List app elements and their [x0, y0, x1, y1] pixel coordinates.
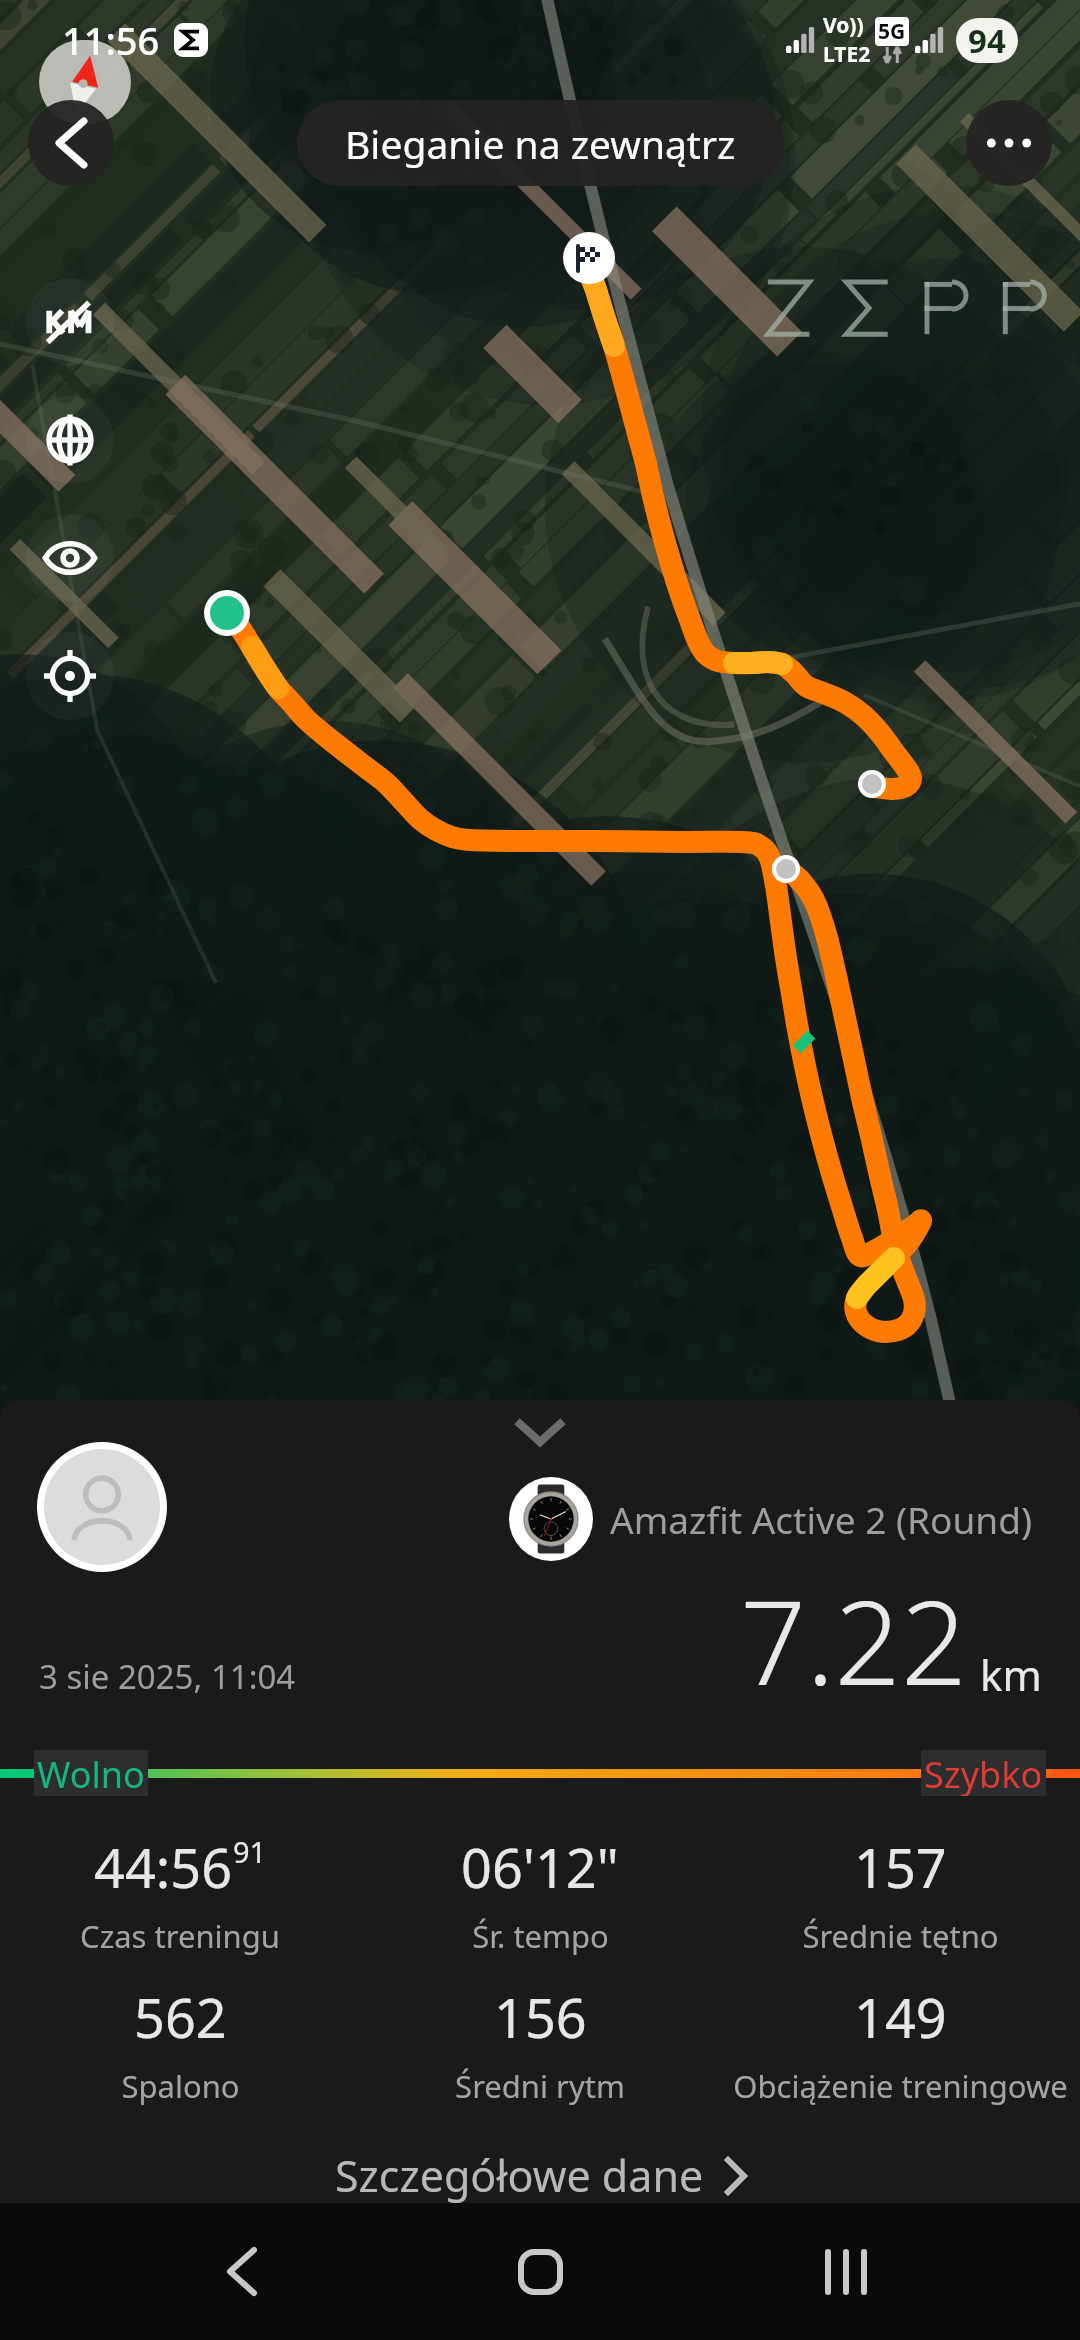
button[interactable]: 149 — [720, 1980, 1080, 2107]
staticText: Vo)) — [823, 11, 864, 40]
button[interactable]: More options — [966, 100, 1052, 186]
button[interactable]: Show route — [26, 514, 114, 602]
button[interactable]: Profile — [37, 1442, 167, 1572]
button[interactable]: Back — [172, 2203, 312, 2340]
button[interactable]: 157 — [720, 1830, 1080, 1957]
button[interactable]: Collapse — [495, 1408, 585, 1458]
staticText: Śr. tempo — [472, 1915, 609, 1957]
staticText: 7.22 — [740, 1561, 968, 1719]
button[interactable]: Back — [28, 100, 114, 186]
staticText: km — [980, 1646, 1042, 1703]
button[interactable]: Home — [470, 2203, 610, 2340]
staticText: 156 — [494, 1980, 587, 2054]
staticText: Bieganie na zewnątrz — [345, 117, 736, 169]
staticText: Wolno — [37, 1750, 145, 1796]
staticText: Czas treningu — [80, 1915, 280, 1957]
staticText: Szybko — [924, 1750, 1043, 1796]
staticText: Amazfit Active 2 (Round) — [610, 1494, 1033, 1544]
button[interactable]: 44:56 — [0, 1830, 360, 1957]
staticText: 157 — [854, 1830, 947, 1904]
staticText: 5G — [878, 17, 906, 46]
button[interactable]: My location — [26, 632, 114, 720]
staticText: 44:56 — [94, 1830, 233, 1904]
staticText: Szczegółowe dane — [335, 2146, 704, 2203]
staticText: Spalono — [121, 2065, 240, 2107]
staticText: 149 — [854, 1980, 947, 2054]
staticText: 562 — [134, 1980, 227, 2054]
button[interactable]: Distance markers — [26, 278, 114, 366]
button[interactable]: 562 — [0, 1980, 360, 2107]
button[interactable]: Bieganie na zewnątrz — [297, 100, 784, 186]
button[interactable]: Map layer — [26, 396, 114, 484]
staticText: Średni rytm — [455, 2065, 625, 2107]
button[interactable]: Szczegółowe dane — [305, 2136, 776, 2203]
staticText: 11:56 — [62, 14, 160, 66]
staticText: Obciążenie treningowe — [733, 2065, 1068, 2107]
staticText: 94 — [968, 18, 1006, 63]
staticText: 91 — [233, 1832, 267, 1871]
staticText: Średnie tętno — [802, 1915, 999, 1957]
staticText: 06'12" — [461, 1830, 619, 1904]
button[interactable]: 06'12" — [360, 1830, 720, 1957]
staticText: 3 sie 2025, 11:04 — [39, 1654, 296, 1699]
button[interactable]: Recent apps — [776, 2203, 916, 2340]
staticText: LTE2 — [823, 40, 871, 69]
button[interactable]: 156 — [360, 1980, 720, 2107]
